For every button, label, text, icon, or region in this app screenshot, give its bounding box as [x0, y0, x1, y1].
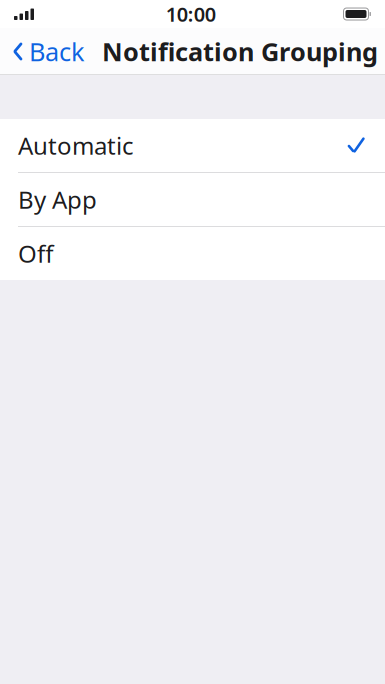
button[interactable]: Off [0, 227, 385, 280]
staticText: Off [18, 238, 54, 269]
staticText: Automatic [18, 130, 134, 161]
button[interactable]: Automatic [0, 119, 385, 172]
staticText: Back [29, 35, 85, 68]
staticText: Notification Grouping [102, 35, 378, 68]
button[interactable]: By App [0, 173, 385, 226]
staticText: 10:00 [166, 1, 216, 27]
staticText: By App [18, 184, 97, 215]
button[interactable]: Back [0, 28, 93, 74]
